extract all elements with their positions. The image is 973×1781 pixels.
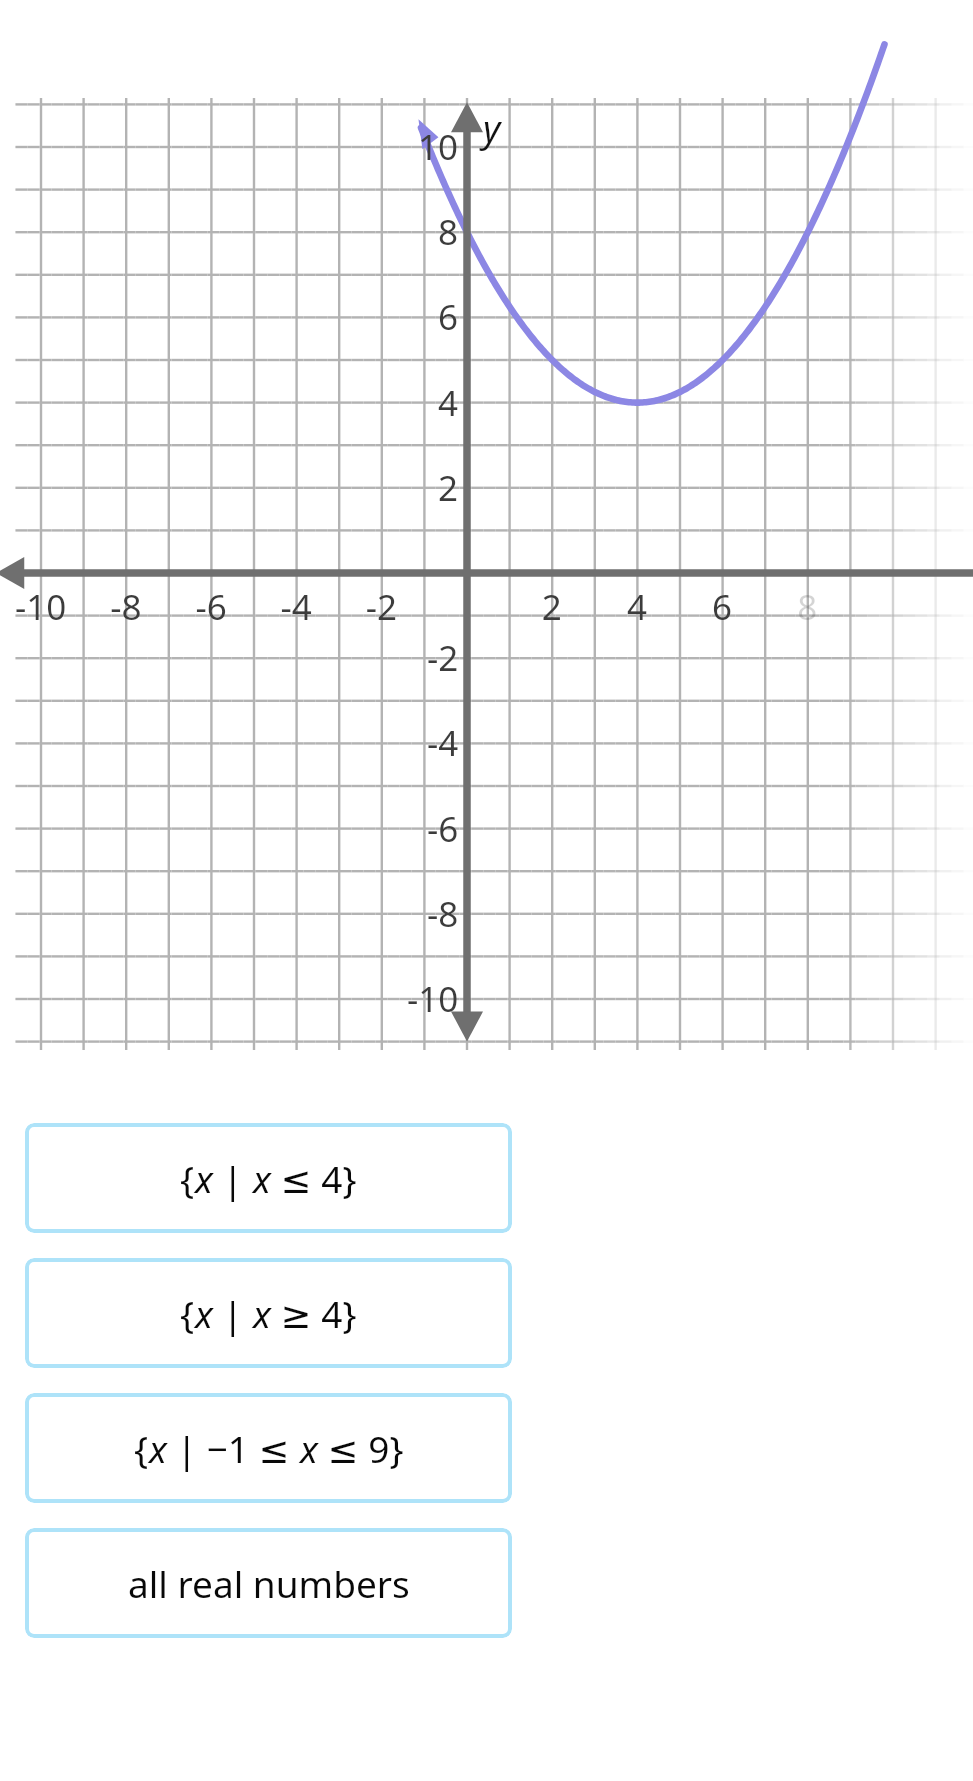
button[interactable]: {: [25, 1123, 512, 1233]
staticText: {: [134, 1423, 149, 1473]
staticText: x: [195, 1288, 213, 1338]
staticText: x: [149, 1423, 167, 1473]
staticText: ≥ 4}: [271, 1288, 357, 1338]
staticText: x: [195, 1153, 213, 1203]
staticText: {: [180, 1288, 195, 1338]
staticText: x: [253, 1153, 271, 1203]
staticText: {: [180, 1153, 195, 1203]
staticText: |: [213, 1153, 253, 1203]
button[interactable]: {: [25, 1258, 512, 1368]
staticText: ≤ 4}: [271, 1153, 357, 1203]
staticText: x: [300, 1423, 318, 1473]
staticText: all real numbers: [128, 1558, 410, 1608]
button[interactable]: {: [25, 1393, 512, 1503]
staticText: |: [213, 1288, 253, 1338]
staticText: x: [253, 1288, 271, 1338]
button[interactable]: all real numbers: [25, 1528, 512, 1638]
staticText: ≤ 9}: [318, 1423, 404, 1473]
staticText: | −1 ≤: [167, 1423, 300, 1473]
